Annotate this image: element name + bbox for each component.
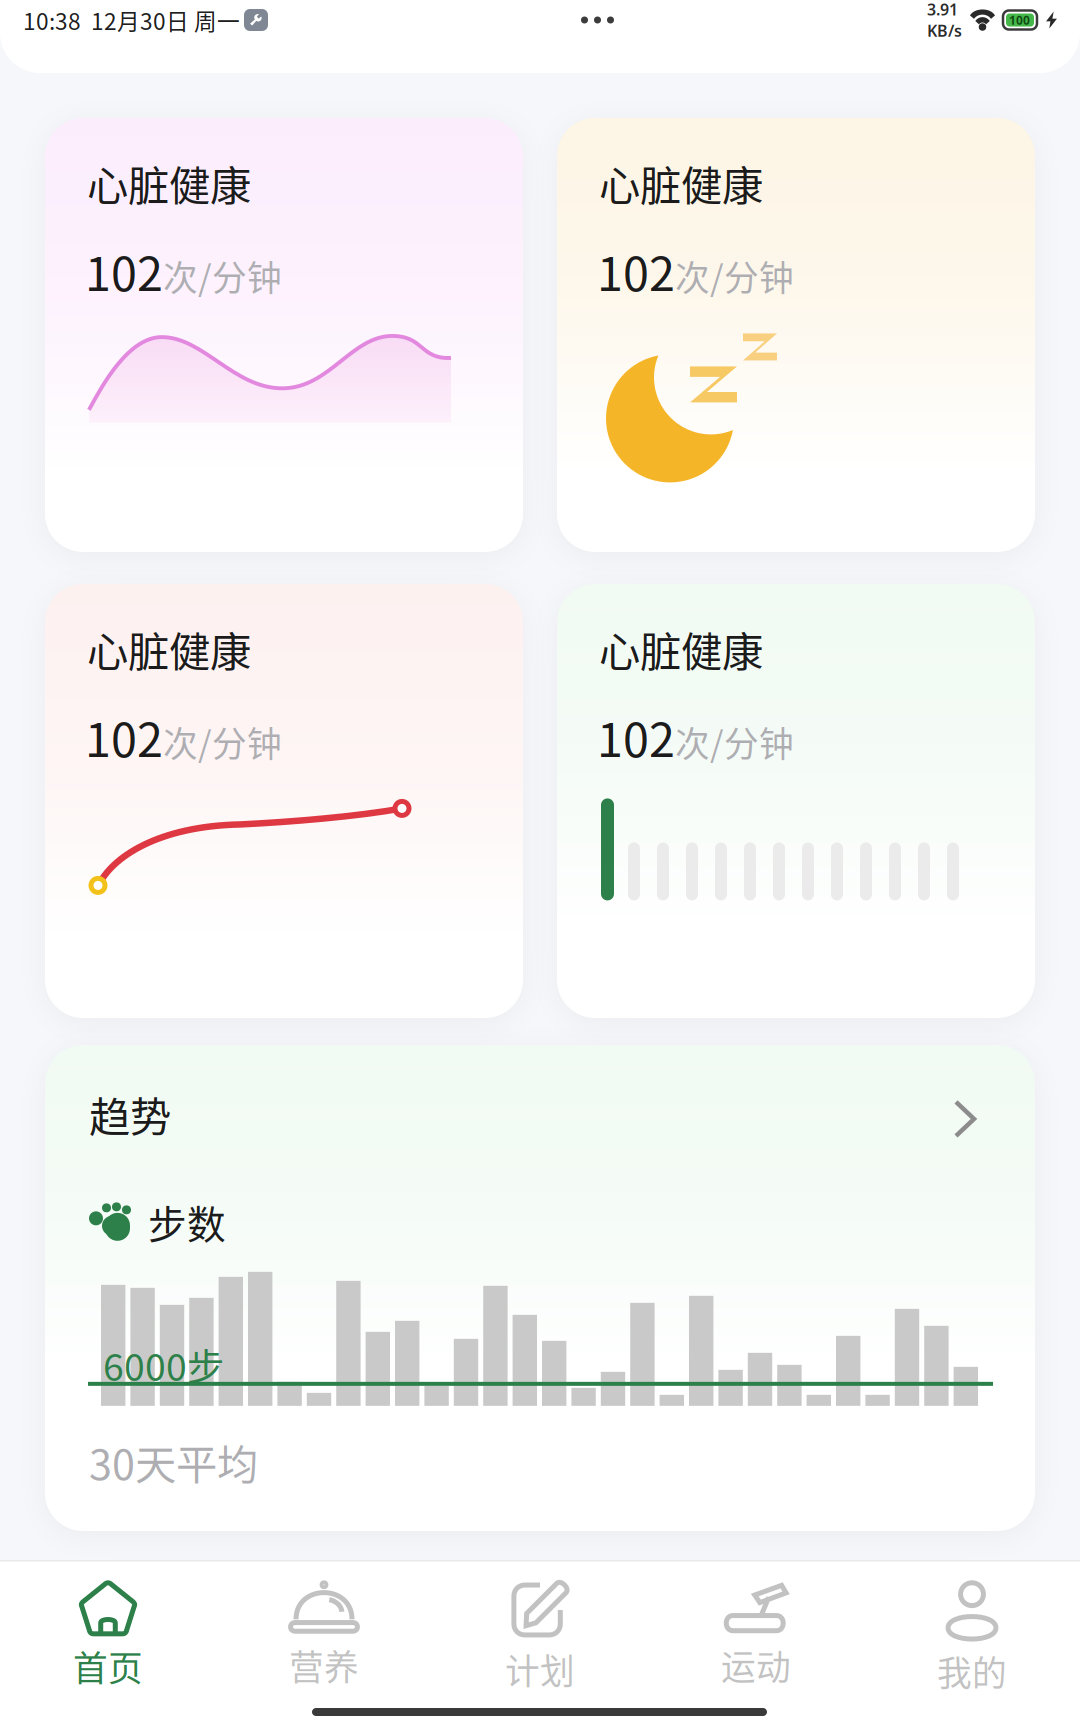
- staticText: 次/分钟: [675, 717, 794, 767]
- button[interactable]: 首页: [0, 1581, 216, 1691]
- button[interactable]: 心脏健康: [45, 118, 523, 552]
- staticText: 6000步: [103, 1338, 224, 1392]
- button[interactable]: 趋势: [45, 1045, 1035, 1531]
- staticText: 计划: [505, 1644, 575, 1694]
- staticText: 次/分钟: [163, 717, 282, 767]
- button[interactable]: 心脏健康: [557, 584, 1035, 1018]
- staticText: 10:38 12月30日 周一: [23, 4, 240, 36]
- staticText: 次/分钟: [675, 251, 794, 301]
- button[interactable]: 我的: [864, 1581, 1080, 1691]
- staticText: 趋势: [89, 1084, 171, 1144]
- button[interactable]: 心脏健康: [45, 584, 523, 1018]
- staticText: KB/s: [927, 20, 962, 41]
- staticText: 102: [85, 703, 163, 770]
- staticText: 心脏健康: [599, 619, 763, 679]
- button[interactable]: 营养: [216, 1581, 432, 1691]
- staticText: 3.91: [927, 0, 958, 20]
- button[interactable]: 运动: [648, 1581, 864, 1691]
- staticText: 营养: [289, 1640, 359, 1690]
- staticText: 102: [597, 237, 675, 304]
- staticText: 步数: [148, 1194, 226, 1250]
- staticText: 102: [85, 237, 163, 304]
- button[interactable]: 计划: [432, 1581, 648, 1691]
- staticText: 心脏健康: [87, 619, 251, 679]
- staticText: 心脏健康: [599, 153, 763, 213]
- button[interactable]: 心脏健康: [557, 118, 1035, 552]
- staticText: 102: [597, 703, 675, 770]
- staticText: 次/分钟: [163, 251, 282, 301]
- staticText: 100: [1009, 12, 1030, 28]
- staticText: 运动: [721, 1640, 791, 1690]
- staticText: 30天平均: [89, 1432, 258, 1492]
- staticText: 首页: [73, 1641, 143, 1691]
- staticText: 心脏健康: [87, 153, 251, 213]
- staticText: 我的: [937, 1646, 1007, 1696]
